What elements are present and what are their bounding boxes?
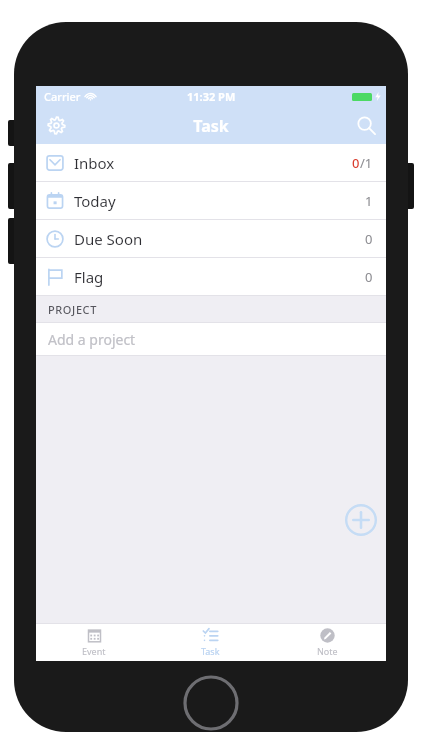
staticText: Flag	[74, 267, 104, 287]
staticText: 1	[365, 192, 373, 210]
staticText: /1	[360, 154, 373, 172]
staticText: Task	[193, 115, 229, 137]
button[interactable]: Due Soon	[36, 220, 386, 257]
other: Home	[183, 675, 239, 731]
staticText: 0	[365, 230, 373, 248]
staticText: Task	[201, 645, 220, 657]
staticText: Today	[74, 191, 116, 211]
staticText: Add a project	[48, 330, 136, 349]
staticText: PROJECT	[48, 302, 97, 317]
button[interactable]: Task	[152, 624, 269, 661]
staticText: 11:32 PM	[187, 89, 236, 104]
staticText: 0	[365, 268, 373, 286]
staticText: Event	[82, 645, 106, 657]
button[interactable]: Flag	[36, 258, 386, 295]
button[interactable]: Add task	[344, 503, 378, 537]
button[interactable]: Event	[36, 624, 152, 661]
staticText: Carrier	[44, 89, 81, 104]
button[interactable]: Note	[269, 624, 386, 661]
button[interactable]: Add a project	[36, 323, 386, 355]
button[interactable]: Search	[346, 107, 386, 144]
button[interactable]: Inbox	[36, 144, 386, 181]
staticText: 0	[352, 154, 360, 172]
button[interactable]: Today	[36, 182, 386, 219]
staticText: Due Soon	[74, 229, 143, 249]
staticText: Inbox	[74, 153, 115, 173]
staticText: Note	[317, 645, 338, 657]
button[interactable]: Settings	[36, 107, 76, 144]
